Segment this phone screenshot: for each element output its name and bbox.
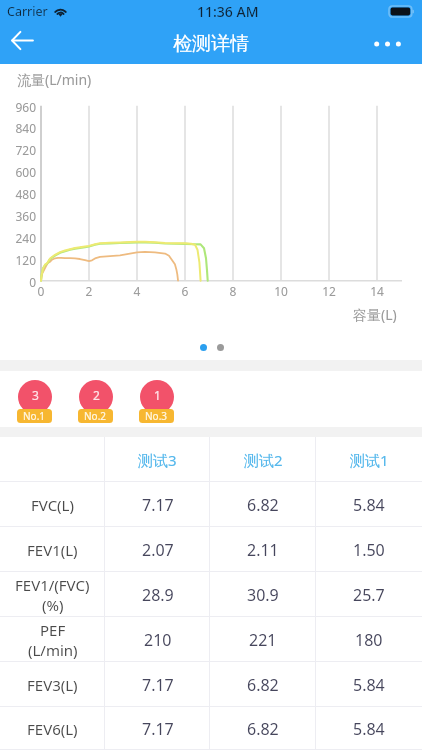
staticText: No.2 bbox=[84, 409, 107, 423]
staticText: 5.84 bbox=[353, 494, 385, 516]
staticText: 3 bbox=[32, 387, 39, 403]
button[interactable]: PEF bbox=[0, 617, 422, 662]
staticText: 720 bbox=[0, 142, 36, 158]
staticText: 7.17 bbox=[142, 494, 174, 516]
staticText: No.3 bbox=[145, 409, 168, 423]
staticText: 6.82 bbox=[247, 494, 279, 516]
staticText: FEV6(L) bbox=[27, 719, 78, 739]
staticText: 2.11 bbox=[247, 539, 279, 561]
staticText: 28.9 bbox=[142, 584, 174, 606]
staticText: 210 bbox=[144, 629, 172, 651]
staticText: 120 bbox=[0, 252, 36, 268]
staticText: 6.82 bbox=[247, 718, 279, 740]
button[interactable]: FEV6(L) bbox=[0, 707, 422, 750]
staticText: 7.17 bbox=[142, 674, 174, 696]
button[interactable]: More options bbox=[371, 29, 404, 59]
staticText: Carrier bbox=[7, 3, 48, 20]
staticText: 测试3 bbox=[138, 450, 177, 470]
staticText: 480 bbox=[0, 186, 36, 202]
staticText: 测试2 bbox=[244, 450, 283, 470]
staticText: 检测详情 bbox=[173, 32, 249, 56]
staticText: 2 bbox=[93, 387, 100, 403]
staticText: (%) bbox=[42, 595, 64, 615]
staticText: 5.84 bbox=[353, 674, 385, 696]
staticText: 4 bbox=[125, 283, 149, 299]
staticText: 7.17 bbox=[142, 718, 174, 740]
staticText: 14 bbox=[365, 283, 389, 299]
staticText: 0 bbox=[29, 283, 53, 299]
button[interactable]: FEV3(L) bbox=[0, 662, 422, 707]
staticText: 600 bbox=[0, 164, 36, 180]
button[interactable]: FEV1(L) bbox=[0, 527, 422, 572]
staticText: 1 bbox=[154, 387, 161, 403]
button[interactable]: 1 bbox=[139, 380, 200, 423]
staticText: 6 bbox=[173, 283, 197, 299]
staticText: 221 bbox=[249, 629, 277, 651]
staticText: FEV3(L) bbox=[27, 675, 78, 695]
staticText: 2 bbox=[77, 283, 101, 299]
staticText: 8 bbox=[221, 283, 245, 299]
staticText: PEF bbox=[40, 620, 66, 640]
staticText: 10 bbox=[269, 283, 293, 299]
staticText: FEV1(L) bbox=[27, 540, 78, 560]
staticText: 25.7 bbox=[353, 584, 385, 606]
staticText: FEV1/(FVC) bbox=[15, 575, 90, 595]
staticText: 流量(L/min) bbox=[17, 70, 92, 89]
staticText: 240 bbox=[0, 230, 36, 246]
staticText: (L/min) bbox=[28, 640, 78, 660]
staticText: 30.9 bbox=[247, 584, 279, 606]
staticText: 6.82 bbox=[247, 674, 279, 696]
staticText: 840 bbox=[0, 120, 36, 136]
staticText: 5.84 bbox=[353, 718, 385, 740]
staticText: 11:36 AM bbox=[197, 2, 259, 21]
staticText: 180 bbox=[355, 629, 383, 651]
staticText: 1.50 bbox=[353, 539, 385, 561]
button[interactable]: 3 bbox=[17, 380, 78, 423]
button[interactable]: FEV1/(FVC) bbox=[0, 572, 422, 617]
staticText: 容量(L) bbox=[353, 305, 397, 324]
staticText: FVC(L) bbox=[31, 495, 74, 515]
button[interactable]: FVC(L) bbox=[0, 482, 422, 527]
staticText: 0 bbox=[0, 274, 36, 290]
button[interactable]: Back bbox=[6, 24, 38, 56]
staticText: 测试1 bbox=[350, 450, 389, 470]
staticText: 960 bbox=[0, 99, 36, 115]
button[interactable]: 2 bbox=[78, 380, 139, 423]
staticText: 2.07 bbox=[142, 539, 174, 561]
staticText: 12 bbox=[317, 283, 341, 299]
staticText: No.1 bbox=[23, 409, 46, 423]
staticText: 360 bbox=[0, 208, 36, 224]
